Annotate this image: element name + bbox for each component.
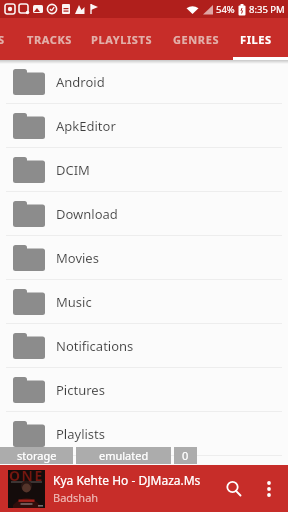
staticText: Kya Kehte Ho - DJMaza.Ms	[53, 472, 201, 488]
staticText: emulated	[99, 448, 149, 463]
staticText: ONE	[9, 466, 44, 485]
button[interactable]: GENRES	[151, 18, 241, 60]
staticText: 54%	[216, 3, 235, 16]
button[interactable]: storage	[0, 447, 73, 464]
staticText: storage	[17, 448, 57, 463]
staticText: DCIM	[56, 161, 90, 179]
staticText: Movies	[56, 249, 99, 267]
staticText: Pictures	[56, 381, 105, 399]
staticText: TRACKS	[27, 32, 72, 47]
staticText: GENRES	[173, 32, 220, 47]
button[interactable]	[254, 465, 284, 512]
button[interactable]: Pictures	[0, 368, 288, 412]
button[interactable]: Notifications	[0, 324, 288, 368]
button[interactable]: DCIM	[0, 148, 288, 192]
button[interactable]: TRACKS	[4, 18, 94, 60]
staticText: Playlists	[56, 425, 105, 443]
button[interactable]: 0	[174, 447, 197, 464]
staticText: PLAYLISTS	[91, 32, 153, 47]
staticText: Android	[56, 73, 105, 91]
button[interactable]: Movies	[0, 236, 288, 280]
staticText: Download	[56, 205, 118, 223]
staticText: FILES	[240, 32, 272, 47]
staticText: S	[0, 32, 5, 47]
button[interactable]: Music	[0, 280, 288, 324]
button[interactable]: PLAYLISTS	[77, 18, 167, 60]
button[interactable]: emulated	[76, 447, 171, 464]
button[interactable]	[214, 465, 254, 512]
button[interactable]: Playlists	[0, 412, 288, 456]
button[interactable]: Download	[0, 192, 288, 236]
button[interactable]: ApkEditor	[0, 104, 288, 148]
staticText: Music	[56, 293, 92, 311]
button[interactable]: Android	[0, 60, 288, 104]
staticText: Notifications	[56, 337, 134, 355]
button[interactable]: ONE	[0, 465, 288, 512]
staticText: ApkEditor	[56, 117, 116, 135]
staticText: 0	[182, 448, 189, 463]
button[interactable]: S	[0, 18, 5, 60]
button[interactable]: FILES	[211, 18, 288, 60]
staticText: Badshah	[53, 490, 99, 505]
staticText: 8:35 PM	[249, 3, 285, 16]
